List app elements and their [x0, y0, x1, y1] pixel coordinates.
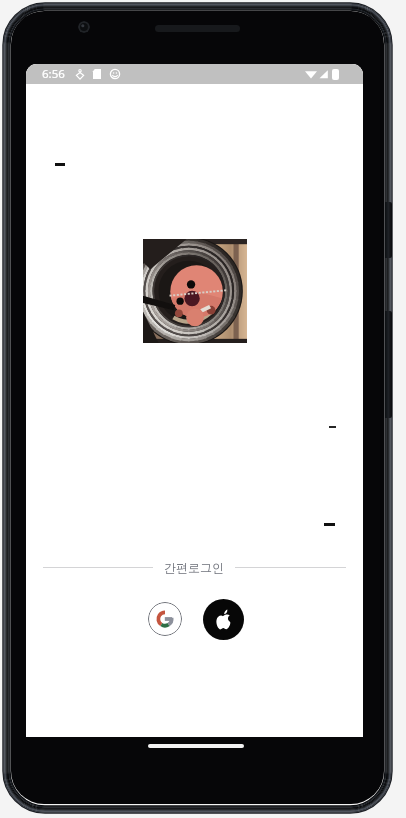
staticText: 간편로그인: [164, 560, 224, 575]
button[interactable]: Sign in with Apple: [203, 599, 244, 640]
button[interactable]: Sign in with Google: [148, 602, 182, 636]
staticText: 6:56: [42, 66, 65, 82]
